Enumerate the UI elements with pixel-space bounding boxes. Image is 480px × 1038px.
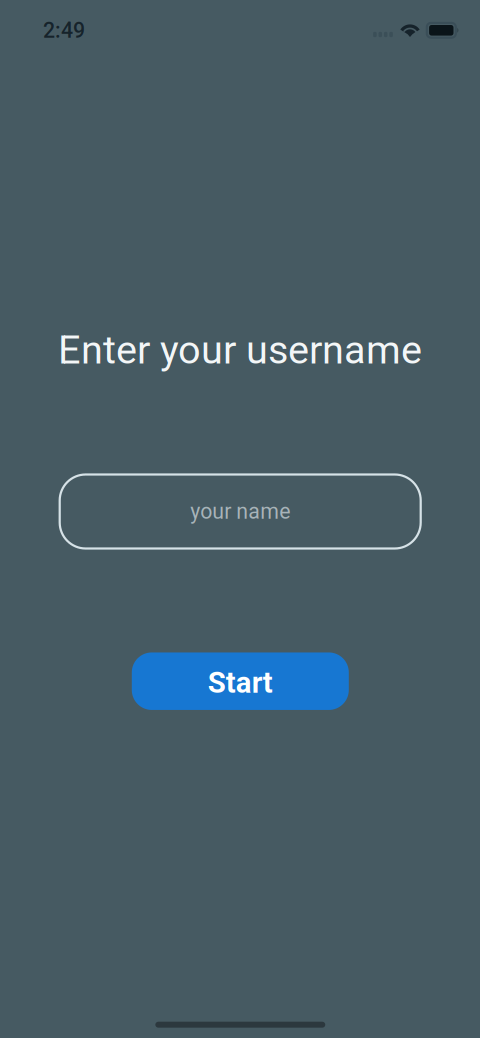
staticText: Start	[208, 665, 273, 700]
button[interactable]: Start	[132, 652, 349, 710]
staticText: Enter your username	[58, 327, 422, 373]
button[interactable]: your name	[60, 474, 421, 548]
staticText: 2:49	[43, 18, 85, 43]
staticText: your name	[190, 499, 290, 524]
